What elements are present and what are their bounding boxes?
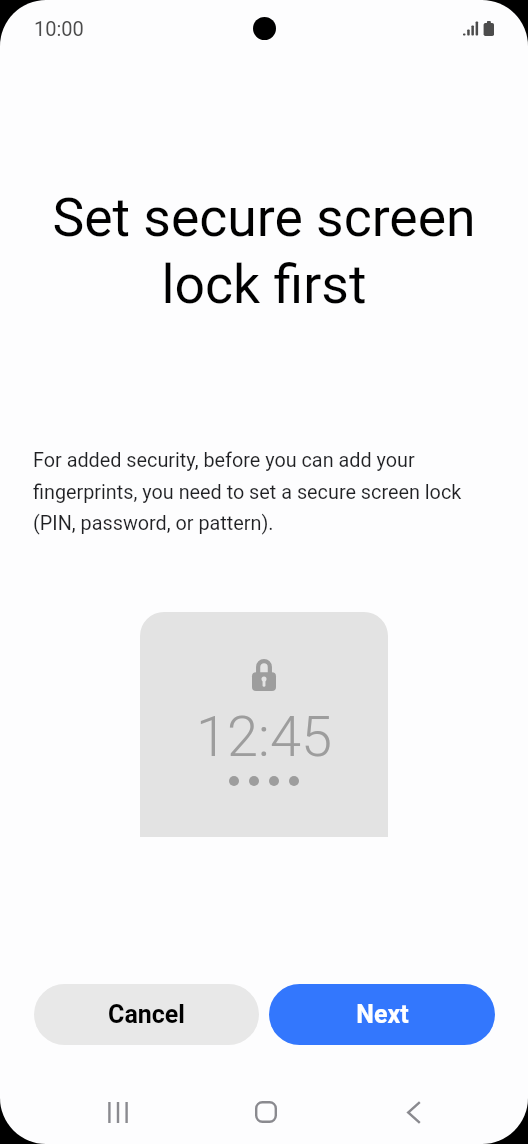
button[interactable]: Home <box>234 1088 298 1136</box>
other: Signal and battery <box>463 20 497 38</box>
staticText: 10:00 <box>34 17 84 40</box>
staticText: Next <box>356 1000 409 1029</box>
staticText: Set secure screen lock first <box>30 186 498 316</box>
button[interactable]: Cancel <box>34 984 259 1045</box>
staticText: 12:45 <box>140 704 388 770</box>
other: Lock <box>252 659 276 691</box>
button[interactable]: Back <box>382 1088 446 1136</box>
staticText: For added security, before you can add y… <box>33 449 500 534</box>
button[interactable]: Recent apps <box>86 1088 150 1136</box>
button[interactable]: Next <box>269 984 495 1045</box>
staticText: Cancel <box>108 1000 185 1029</box>
